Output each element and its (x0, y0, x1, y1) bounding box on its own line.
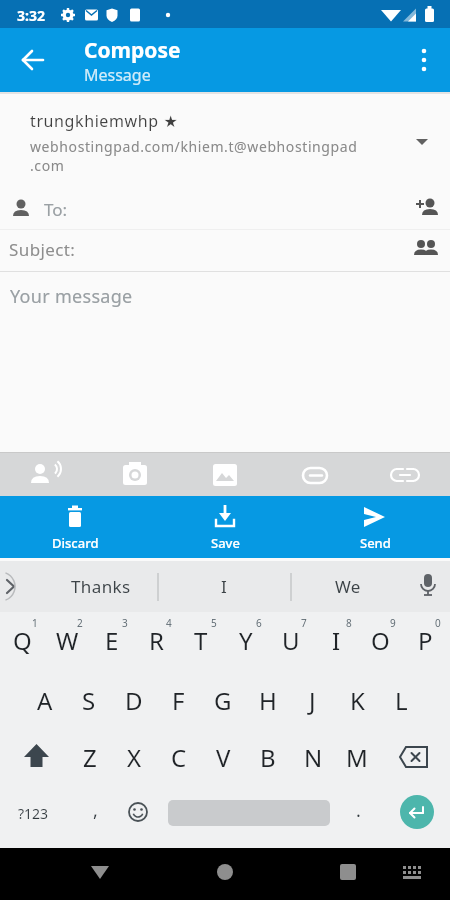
staticText: Your message (10, 284, 133, 309)
button[interactable] (113, 453, 157, 496)
staticText: Compose (84, 36, 181, 65)
button[interactable] (203, 850, 247, 894)
button[interactable] (314, 618, 358, 664)
staticText: I (332, 624, 341, 657)
staticText: J (309, 684, 316, 717)
button[interactable] (75, 790, 115, 836)
staticText: 9 (390, 616, 396, 630)
staticText: 5 (211, 616, 217, 630)
button[interactable] (13, 40, 53, 80)
button[interactable] (269, 618, 313, 664)
button[interactable] (392, 853, 430, 891)
staticText: trungkhiemwhp ★ (30, 110, 179, 132)
button[interactable] (90, 618, 134, 664)
button[interactable] (0, 618, 44, 664)
button[interactable] (325, 496, 425, 558)
button[interactable] (8, 790, 58, 836)
staticText: ?123 (18, 804, 49, 823)
button[interactable] (390, 734, 442, 780)
button[interactable] (157, 734, 201, 780)
staticText: P (418, 624, 433, 657)
button[interactable] (156, 676, 200, 722)
button[interactable] (291, 734, 335, 780)
button[interactable] (179, 618, 223, 664)
staticText: , (93, 798, 98, 823)
staticText: Subject: (9, 238, 76, 261)
button[interactable] (134, 618, 178, 664)
button[interactable] (203, 453, 247, 496)
button[interactable] (78, 850, 122, 894)
staticText: 7 (301, 616, 307, 630)
button[interactable] (326, 850, 370, 894)
button[interactable] (112, 734, 156, 780)
staticText: B (260, 741, 276, 774)
button[interactable] (0, 94, 450, 188)
button[interactable] (379, 676, 423, 722)
staticText: O (371, 624, 390, 657)
staticText: Y (239, 624, 253, 657)
button[interactable] (10, 734, 62, 780)
staticText: D (125, 684, 143, 717)
staticText: 4 (166, 616, 172, 630)
button[interactable] (403, 618, 447, 664)
staticText: To: (44, 198, 68, 221)
button[interactable] (335, 676, 379, 722)
staticText: R (149, 624, 164, 657)
staticText: H (259, 684, 277, 717)
button[interactable] (68, 734, 112, 780)
button[interactable] (201, 676, 245, 722)
staticText: Save (211, 534, 240, 552)
button[interactable] (291, 561, 411, 612)
staticText: A (37, 684, 53, 717)
staticText: 3 (122, 616, 128, 630)
staticText: C (171, 741, 187, 774)
button[interactable] (0, 230, 450, 271)
staticText: Q (13, 624, 32, 657)
button[interactable] (290, 676, 334, 722)
staticText: . (356, 798, 361, 823)
button[interactable] (45, 618, 89, 664)
button[interactable] (246, 676, 290, 722)
staticText: 1 (32, 616, 38, 630)
button[interactable] (404, 40, 444, 80)
staticText: 2 (77, 616, 83, 630)
button[interactable] (0, 272, 450, 452)
staticText: K (350, 684, 365, 717)
button[interactable] (400, 795, 434, 829)
staticText: I (221, 575, 227, 598)
button[interactable] (112, 676, 156, 722)
button[interactable] (335, 734, 379, 780)
staticText: 0 (435, 616, 441, 630)
button[interactable] (358, 618, 402, 664)
button[interactable] (23, 453, 67, 496)
button[interactable] (201, 734, 245, 780)
button[interactable] (246, 734, 290, 780)
staticText: V (216, 741, 231, 774)
staticText: G (214, 684, 232, 717)
button[interactable] (338, 790, 378, 836)
button[interactable] (224, 618, 268, 664)
staticText: M (346, 741, 368, 774)
button[interactable] (158, 561, 291, 612)
button[interactable] (116, 790, 160, 836)
staticText: N (304, 741, 323, 774)
staticText: We (335, 575, 361, 598)
button[interactable] (25, 496, 125, 558)
button[interactable] (293, 453, 337, 496)
button[interactable] (383, 453, 427, 496)
button[interactable] (67, 676, 111, 722)
button[interactable] (23, 676, 67, 722)
staticText: X (127, 741, 142, 774)
staticText: Z (83, 741, 97, 774)
staticText: F (172, 684, 185, 717)
staticText: 3:32 (17, 6, 45, 25)
button[interactable] (20, 561, 158, 612)
button[interactable] (175, 496, 275, 558)
staticText: L (395, 684, 408, 717)
staticText: Send (360, 534, 391, 552)
staticText: S (82, 684, 96, 717)
staticText: Message (84, 64, 151, 86)
button[interactable] (0, 189, 450, 229)
staticText: .com (30, 156, 65, 175)
